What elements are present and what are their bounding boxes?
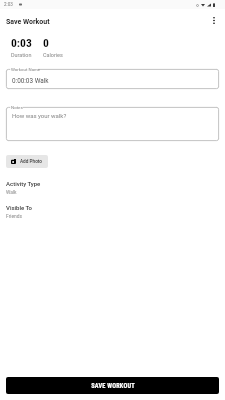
staticText: SAVE WORKOUT: [91, 382, 135, 389]
staticText: Friends: [6, 213, 23, 219]
button[interactable]: More options: [206, 12, 222, 28]
button[interactable]: Add Photo: [6, 155, 48, 168]
staticText: Duration: [11, 52, 32, 58]
staticText: How was your walk?: [12, 112, 67, 119]
staticText: Walk: [6, 189, 17, 195]
staticText: Visible To: [6, 204, 32, 211]
staticText: Add Photo: [20, 159, 43, 165]
button[interactable]: [6, 107, 219, 141]
staticText: Notes: [11, 105, 23, 110]
staticText: Workout Name: [11, 67, 41, 72]
staticText: Activity Type: [6, 180, 41, 187]
button[interactable]: Activity Type: [6, 180, 41, 195]
staticText: 0: [43, 36, 49, 50]
staticText: 0:00:03 Walk: [12, 77, 49, 85]
staticText: 0:03: [11, 36, 32, 50]
staticText: Save Workout: [6, 18, 50, 26]
button[interactable]: [6, 69, 219, 89]
staticText: 2:03: [4, 2, 13, 7]
button[interactable]: Visible To: [6, 204, 32, 219]
staticText: Calories: [43, 52, 63, 58]
button[interactable]: SAVE WORKOUT: [6, 377, 219, 394]
